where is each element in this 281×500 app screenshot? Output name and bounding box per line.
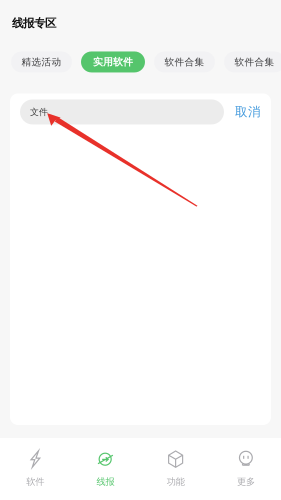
staticText: 软件合集 xyxy=(234,56,274,68)
staticText: 线报 xyxy=(96,476,114,488)
button[interactable]: 软件 xyxy=(0,438,70,500)
staticText: 软件 xyxy=(26,476,44,488)
staticText: 软件合集 xyxy=(164,56,204,68)
staticText: 精选活动 xyxy=(21,56,61,68)
staticText: 文件 xyxy=(30,106,48,118)
button[interactable]: 更多 xyxy=(211,438,281,500)
button[interactable]: 取消 xyxy=(224,104,271,120)
staticText: 实用软件 xyxy=(93,56,133,68)
button[interactable]: 线报 xyxy=(70,438,140,500)
button[interactable]: 软件合集 xyxy=(154,51,215,72)
button[interactable]: 精选活动 xyxy=(11,51,72,72)
staticText: 线报专区 xyxy=(12,16,56,30)
staticText: 功能 xyxy=(167,476,185,488)
staticText: 更多 xyxy=(237,476,255,488)
button[interactable]: 功能 xyxy=(140,438,211,500)
button[interactable]: 实用软件 xyxy=(81,51,145,72)
button[interactable]: 软件合集 xyxy=(224,51,281,72)
staticText: 取消 xyxy=(235,104,261,120)
